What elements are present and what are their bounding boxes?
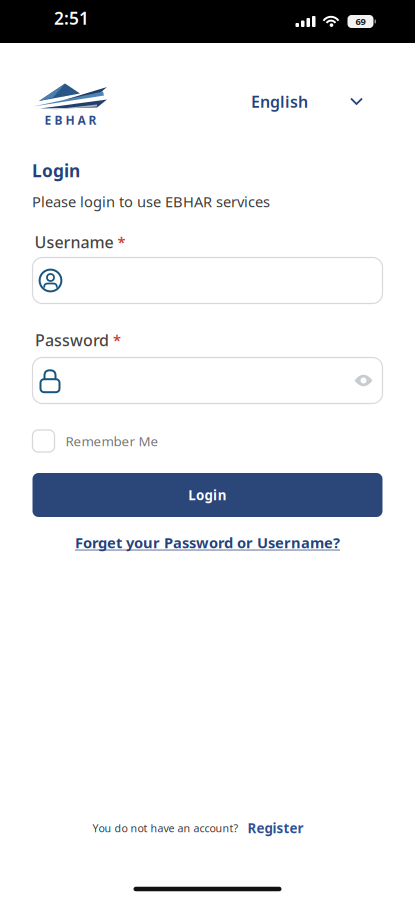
staticText: * [117,232,125,252]
staticText: E B H A R [44,112,96,128]
button[interactable]: Forget your Password or Username? [75,533,340,552]
button[interactable] [32,357,382,403]
staticText: Password [35,329,109,351]
staticText: Login [32,159,80,182]
staticText: Forget your Password or Username? [75,533,340,552]
staticText: * [113,330,121,350]
staticText: You do not have an account? [92,821,238,835]
staticText: 2:51 [54,6,89,29]
button[interactable] [32,430,54,452]
staticText: English [251,91,308,112]
button[interactable]: Register [247,819,303,837]
button[interactable]: Login [32,473,382,517]
staticText: Remember Me [65,432,158,450]
staticText: Please login to use EBHAR services [32,192,270,211]
staticText: Login [188,486,227,504]
staticText: Register [247,819,303,837]
button[interactable]: English [251,91,362,112]
staticText: Username [34,231,113,253]
button[interactable] [32,257,382,303]
staticText: 69 [355,15,365,28]
